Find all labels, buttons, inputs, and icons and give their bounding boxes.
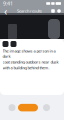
staticText: with a building behind them. xyxy=(2,65,49,70)
button[interactable]: Ask with voice xyxy=(18,104,38,111)
staticText: coat standing outdoors near dusk xyxy=(2,59,58,64)
button[interactable]: Add xyxy=(8,104,15,111)
staticText: 9:41 xyxy=(3,0,13,7)
button[interactable]: More options xyxy=(56,7,62,15)
button[interactable]: Play xyxy=(43,104,50,111)
staticText: The image shows a person in a dark xyxy=(2,48,55,59)
button[interactable]: Share xyxy=(50,7,56,15)
staticText: Search results xyxy=(17,8,42,14)
button[interactable]: Search image xyxy=(10,41,16,47)
button[interactable]: Back xyxy=(2,7,9,15)
staticText: ‹ xyxy=(4,4,7,18)
button[interactable]: Lens xyxy=(2,41,8,47)
